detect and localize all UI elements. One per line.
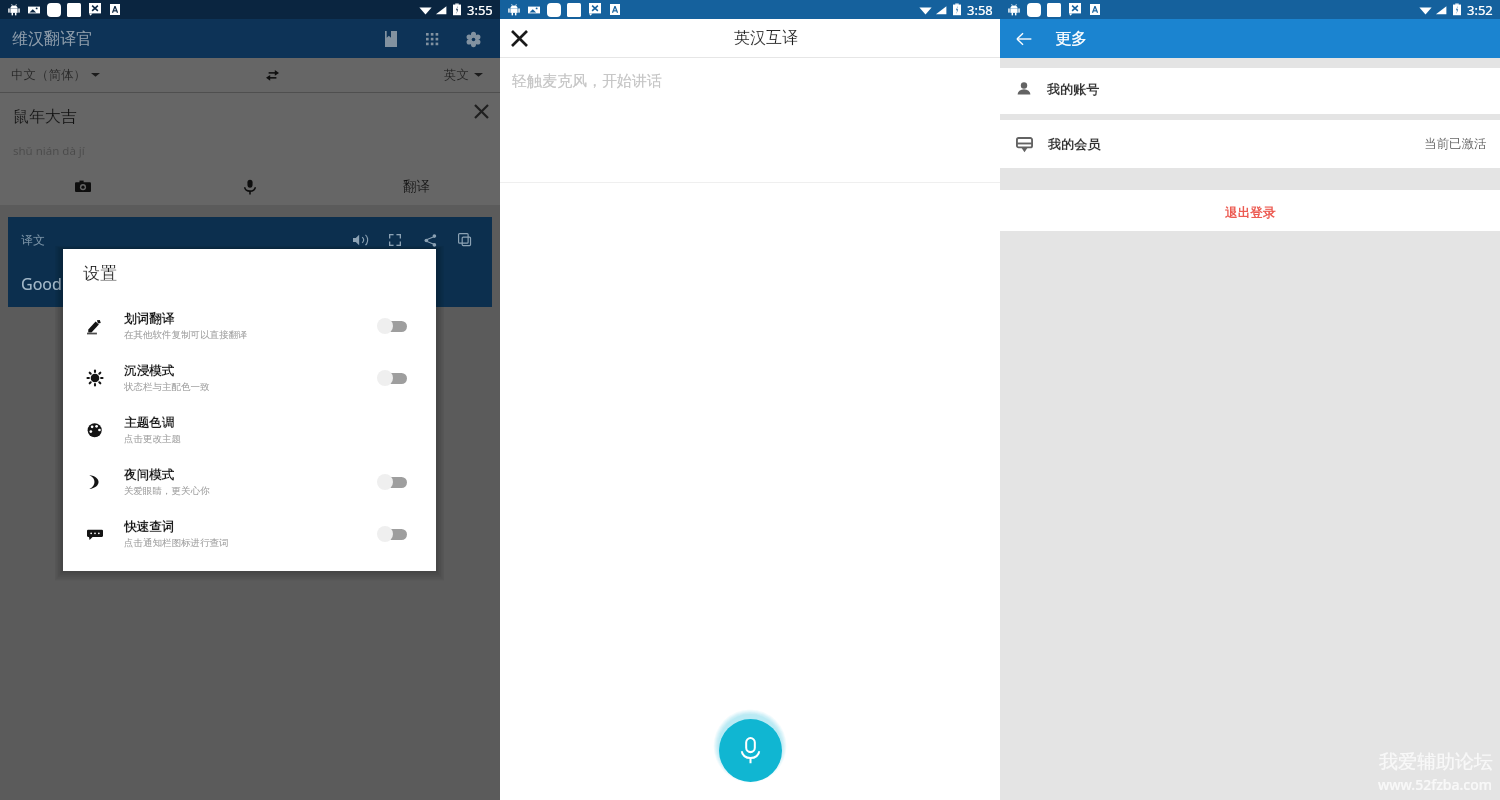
button[interactable]: 沉浸模式 xyxy=(63,352,436,404)
button[interactable]: Clear xyxy=(467,97,495,125)
button[interactable]: 英文 xyxy=(444,67,483,83)
button[interactable]: Toggle 夜间模式 xyxy=(377,473,407,491)
staticText: Good luck in the year of the Rat xyxy=(21,273,258,295)
button[interactable]: Microphone xyxy=(719,719,782,782)
staticText: 点击通知栏图标进行查词 xyxy=(124,537,229,549)
button[interactable]: Share xyxy=(419,229,441,251)
staticText: 3:58 xyxy=(967,1,993,19)
staticText: 划词翻译 xyxy=(124,311,174,327)
staticText: 点击更改主题 xyxy=(124,433,181,445)
button[interactable]: Close xyxy=(506,25,532,51)
staticText: 英汉互译 xyxy=(734,28,798,48)
staticText: 翻译 xyxy=(403,178,430,195)
button[interactable]: Toggle 沉浸模式 xyxy=(377,369,407,387)
button[interactable]: 我的账号 xyxy=(1000,68,1500,114)
staticText: 译文 xyxy=(21,232,45,247)
staticText: 中文（简体） xyxy=(11,67,86,83)
staticText: 关爱眼睛，更关心你 xyxy=(124,485,210,497)
staticText: shǔ nián dà jí xyxy=(13,143,85,159)
button[interactable]: Speak xyxy=(349,229,371,251)
button[interactable]: Toggle 划词翻译 xyxy=(377,317,407,335)
staticText: 沉浸模式 xyxy=(124,363,174,379)
staticText: 我爱辅助论坛 xyxy=(1379,750,1493,774)
button[interactable]: Camera xyxy=(0,168,166,205)
button[interactable]: Dictionary xyxy=(376,24,406,54)
button[interactable]: 主题色调 xyxy=(63,404,436,456)
button[interactable]: Voice input xyxy=(166,168,333,205)
staticText: 退出登录 xyxy=(1225,205,1275,221)
staticText: 主题色调 xyxy=(124,415,174,431)
button[interactable]: 划词翻译 xyxy=(63,300,436,352)
button[interactable]: 翻译 xyxy=(333,168,500,205)
button[interactable]: Swap languages xyxy=(258,61,286,89)
staticText: 当前已激活 xyxy=(1424,136,1487,152)
button[interactable]: Settings xyxy=(458,24,488,54)
staticText: 快速查词 xyxy=(124,519,174,535)
staticText: 我的会员 xyxy=(1048,136,1100,152)
staticText: 状态栏与主配色一致 xyxy=(124,381,210,393)
staticText: 在其他软件复制可以直接翻译 xyxy=(124,329,248,341)
button[interactable]: 我的会员 xyxy=(1000,120,1500,168)
staticText: 更多 xyxy=(1055,29,1087,49)
button[interactable]: Back xyxy=(1011,26,1037,52)
staticText: 我的账号 xyxy=(1047,81,1099,97)
staticText: 3:52 xyxy=(1467,1,1493,19)
button[interactable]: 夜间模式 xyxy=(63,456,436,508)
button[interactable]: Copy xyxy=(454,229,476,251)
staticText: 夜间模式 xyxy=(124,467,174,483)
staticText: 鼠年大吉 xyxy=(13,107,77,127)
staticText: 英文 xyxy=(444,67,469,83)
staticText: 维汉翻译官 xyxy=(12,29,92,49)
button[interactable]: 中文（简体） xyxy=(11,67,100,83)
button[interactable]: Apps xyxy=(417,24,447,54)
staticText: 3:55 xyxy=(467,1,493,19)
staticText: 轻触麦克风，开始讲话 xyxy=(512,72,662,91)
staticText: www.52fzba.com xyxy=(1378,775,1493,794)
button[interactable]: 快速查词 xyxy=(63,508,436,560)
button[interactable]: Toggle 快速查词 xyxy=(377,525,407,543)
button[interactable]: 退出登录 xyxy=(1000,190,1500,231)
button[interactable]: Fullscreen xyxy=(384,229,406,251)
staticText: 设置 xyxy=(83,263,117,284)
